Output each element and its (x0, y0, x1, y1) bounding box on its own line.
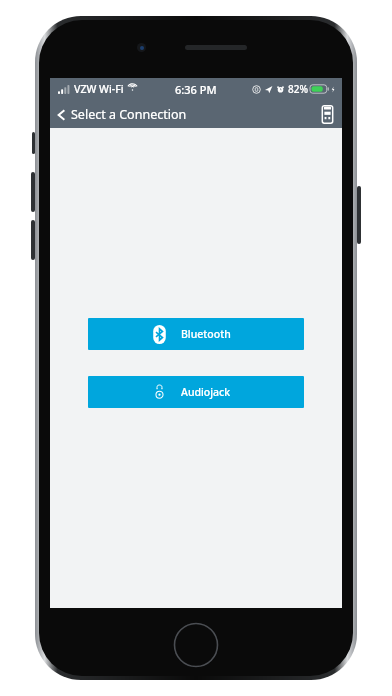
button[interactable]: Connect via Bluetooth (88, 318, 304, 350)
staticText: 6:36 PM (175, 82, 217, 97)
staticText: Bluetooth (181, 327, 231, 341)
staticText: Select a Connection (71, 106, 187, 123)
button[interactable]: Device (313, 103, 342, 126)
staticText: 82% (288, 82, 308, 96)
button[interactable]: Select a Connection (50, 102, 195, 127)
staticText: Audiojack (181, 385, 231, 399)
staticText: VZW Wi-Fi (74, 82, 124, 96)
button[interactable]: Connect via Audiojack (88, 376, 304, 408)
